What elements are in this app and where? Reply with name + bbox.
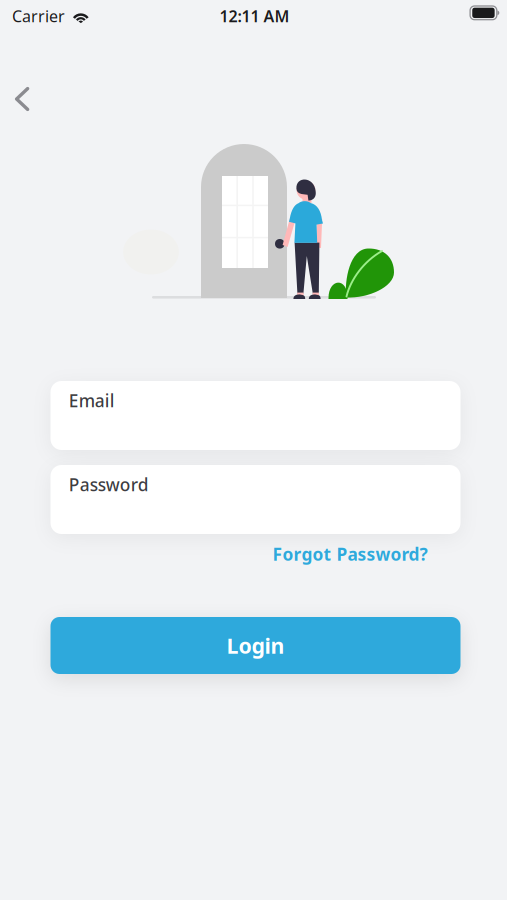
staticText: Carrier xyxy=(12,5,65,27)
staticText: 12:11 AM xyxy=(219,5,289,27)
staticText: Login xyxy=(226,631,284,660)
button[interactable]: Back xyxy=(0,75,45,123)
staticText: Password xyxy=(69,473,149,496)
button[interactable]: Login xyxy=(50,617,460,674)
staticText: Email xyxy=(69,389,115,412)
button[interactable]: Forgot Password? xyxy=(257,539,429,569)
staticText: Forgot Password? xyxy=(272,542,427,565)
